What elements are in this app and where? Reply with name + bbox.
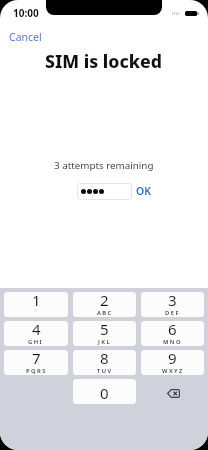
button[interactable]: 7 xyxy=(4,350,68,375)
staticText: ABC xyxy=(97,309,113,317)
button[interactable]: 0 xyxy=(73,379,136,404)
button[interactable]: 4 xyxy=(4,321,68,346)
staticText: 3 xyxy=(168,292,177,310)
staticText: DEF xyxy=(165,309,180,317)
button[interactable]: 8 xyxy=(73,350,136,375)
staticText: 7 xyxy=(32,350,41,368)
button[interactable]: OK xyxy=(136,184,152,198)
staticText: PQRS xyxy=(26,367,47,375)
button[interactable] xyxy=(77,183,132,200)
staticText: OK xyxy=(136,184,152,198)
button[interactable]: 3 xyxy=(141,292,204,317)
staticText: 2 xyxy=(100,292,109,310)
staticText: Cancel xyxy=(9,30,42,44)
button[interactable]: 2 xyxy=(73,292,136,317)
staticText: 3 attempts remaining xyxy=(54,159,154,172)
staticText: 4 xyxy=(32,321,41,339)
staticText: 8 xyxy=(100,350,109,368)
button[interactable]: Cancel xyxy=(9,30,42,44)
staticText: 10:00 xyxy=(13,6,39,20)
staticText: WXYZ xyxy=(162,367,184,375)
staticText: MNO xyxy=(163,338,182,346)
button[interactable]: 1 xyxy=(4,292,68,317)
button[interactable]: 9 xyxy=(141,350,204,375)
button[interactable]: 5 xyxy=(73,321,136,346)
staticText: 1 xyxy=(32,292,41,310)
button[interactable]: 6 xyxy=(141,321,204,346)
staticText: JKL xyxy=(98,338,112,346)
staticText: 5 xyxy=(100,321,109,339)
button[interactable]: Delete xyxy=(141,379,204,404)
staticText: 0 xyxy=(100,383,109,403)
staticText: 6 xyxy=(168,321,177,339)
staticText: 9 xyxy=(168,350,177,368)
staticText: SIM is locked xyxy=(45,49,163,73)
staticText: GHI xyxy=(28,338,44,346)
staticText: TUV xyxy=(97,367,113,375)
